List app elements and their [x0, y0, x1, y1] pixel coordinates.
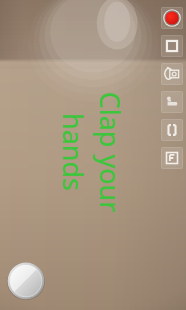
button[interactable]: Settings: [161, 91, 183, 113]
button[interactable]: Focus area: [161, 119, 183, 141]
button[interactable]: Switch camera: [161, 63, 183, 85]
button[interactable]: Shutter: [7, 262, 45, 300]
button[interactable]: Record: [161, 7, 183, 29]
button[interactable]: Flash: [161, 147, 183, 169]
button[interactable]: Stop: [161, 35, 183, 57]
staticText: Clap your hands: [55, 59, 129, 245]
